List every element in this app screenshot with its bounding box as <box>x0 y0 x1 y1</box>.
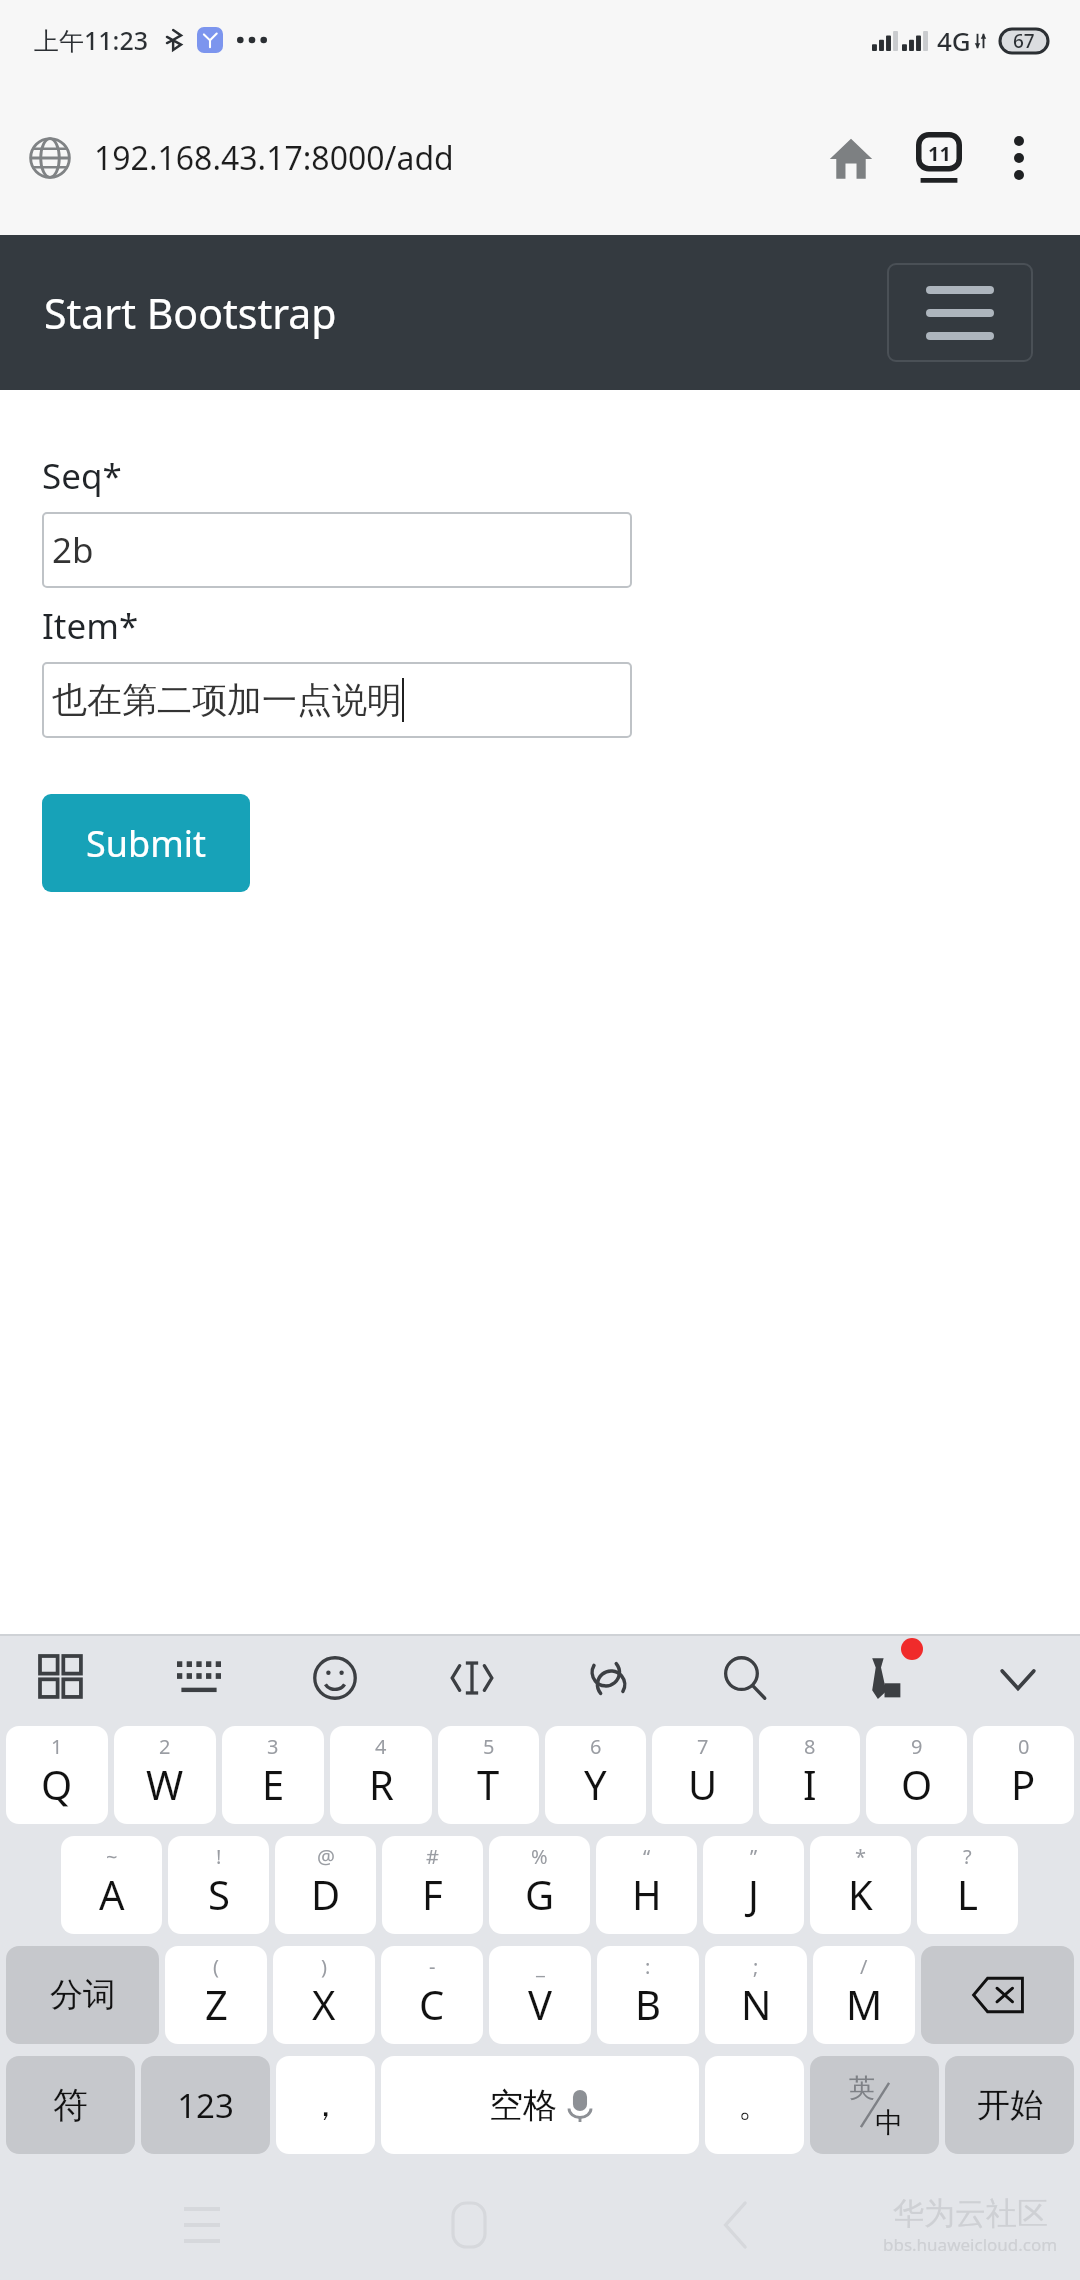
button[interactable]: - <box>381 1946 483 2044</box>
button[interactable]: 分词 <box>6 1946 159 2044</box>
staticText: 4G <box>937 23 971 58</box>
staticText: 也在第二项加一点说明 <box>52 678 402 722</box>
staticText: 分词 <box>50 1974 116 2016</box>
button[interactable]: 符 <box>6 2056 135 2154</box>
button[interactable]: 4 <box>330 1726 432 1824</box>
staticText: A <box>99 1867 125 1921</box>
button[interactable]: / <box>813 1946 915 2044</box>
button[interactable]: 3 <box>222 1726 324 1824</box>
staticText: % <box>531 1843 548 1870</box>
staticText: ) <box>321 1953 327 1980</box>
staticText: O <box>901 1757 933 1811</box>
staticText: 上午11:23 <box>34 23 149 57</box>
staticText: ， <box>309 2084 342 2126</box>
staticText: U <box>688 1757 718 1811</box>
button[interactable]: ; <box>705 1946 807 2044</box>
staticText: ( <box>213 1953 219 1980</box>
button[interactable]: 。 <box>705 2056 804 2154</box>
button[interactable]: 7 <box>652 1726 753 1824</box>
button[interactable]: @ <box>275 1836 376 1934</box>
button[interactable]: Start Bootstrap <box>44 285 337 341</box>
button[interactable]: 123 <box>141 2056 270 2154</box>
button[interactable]: 1 <box>6 1726 108 1824</box>
button[interactable]: More options <box>984 123 1054 193</box>
button[interactable]: 6 <box>545 1726 646 1824</box>
staticText: 2 <box>159 1733 171 1760</box>
staticText: 6 <box>590 1733 602 1760</box>
staticText: 。 <box>738 2084 771 2126</box>
staticText: - <box>429 1953 436 1980</box>
staticText: N <box>741 1977 772 2031</box>
button[interactable]: 空格 <box>381 2056 699 2154</box>
button[interactable]: 2b <box>42 512 632 588</box>
button[interactable]: Layouts <box>26 1642 98 1714</box>
button[interactable]: 也在第二项加一点说明 <box>42 662 632 738</box>
button[interactable]: 2 <box>114 1726 216 1824</box>
staticText: 0 <box>1018 1733 1030 1760</box>
button[interactable]: Submit <box>42 794 250 892</box>
button[interactable]: ! <box>168 1836 269 1934</box>
button[interactable]: Toggle navigation <box>887 263 1033 362</box>
staticText: X <box>312 1977 336 2031</box>
button[interactable]: 5 <box>438 1726 539 1824</box>
button[interactable]: Search <box>709 1642 781 1714</box>
staticText: Y <box>584 1757 607 1811</box>
staticText: 开始 <box>977 2084 1043 2126</box>
button[interactable]: 开始 <box>945 2056 1074 2154</box>
button[interactable]: 8 <box>759 1726 860 1824</box>
button[interactable]: Emoji <box>299 1642 371 1714</box>
staticText: R <box>369 1757 394 1811</box>
button[interactable]: Ads <box>845 1642 917 1714</box>
button[interactable]: 0 <box>973 1726 1074 1824</box>
button[interactable]: % <box>489 1836 590 1934</box>
staticText: 5 <box>483 1733 495 1760</box>
staticText: _ <box>536 1953 545 1980</box>
staticText: I <box>803 1757 817 1811</box>
staticText: S <box>208 1867 230 1921</box>
button[interactable]: ” <box>703 1836 804 1934</box>
staticText: 3 <box>267 1733 279 1760</box>
staticText: ~ <box>106 1843 118 1870</box>
button[interactable]: _ <box>489 1946 591 2044</box>
staticText: V <box>528 1977 552 2031</box>
button[interactable]: ， <box>276 2056 375 2154</box>
staticText: 192.168.43.17:8000/add <box>94 136 454 180</box>
button[interactable]: # <box>382 1836 483 1934</box>
staticText: L <box>957 1867 978 1921</box>
staticText: / <box>860 1953 868 1980</box>
staticText: 8 <box>804 1733 816 1760</box>
button[interactable]: Clipboard <box>572 1642 644 1714</box>
button[interactable]: Switch English Chinese <box>810 2056 939 2154</box>
staticText: 7 <box>697 1733 709 1760</box>
button[interactable]: : <box>597 1946 699 2044</box>
button[interactable]: Tabs, 11 open <box>900 119 978 197</box>
staticText: F <box>422 1867 443 1921</box>
button[interactable]: ~ <box>61 1836 162 1934</box>
staticText: P <box>1011 1757 1036 1811</box>
staticText: ; <box>753 1953 759 1980</box>
staticText: 华为云社区 <box>893 2194 1048 2233</box>
button[interactable]: ) <box>273 1946 375 2044</box>
button[interactable]: Move cursor <box>436 1642 508 1714</box>
button[interactable]: Backspace <box>921 1946 1074 2044</box>
staticText: E <box>262 1757 285 1811</box>
button[interactable]: ( <box>165 1946 267 2044</box>
staticText: Submit <box>86 819 207 868</box>
button[interactable]: Hide keyboard <box>982 1642 1054 1714</box>
staticText: T <box>477 1757 500 1811</box>
staticText: “ <box>643 1843 651 1870</box>
button[interactable]: “ <box>596 1836 697 1934</box>
staticText: : <box>645 1953 651 1980</box>
staticText: J <box>748 1867 759 1921</box>
staticText: G <box>525 1867 555 1921</box>
button[interactable]: Home <box>812 119 890 197</box>
button[interactable]: 9 <box>866 1726 967 1824</box>
staticText: H <box>632 1867 662 1921</box>
button[interactable]: Keyboard layout <box>163 1642 235 1714</box>
staticText: * <box>855 1843 867 1870</box>
button[interactable]: ? <box>917 1836 1018 1934</box>
button[interactable]: * <box>810 1836 911 1934</box>
button[interactable]: Recent apps <box>160 2183 244 2267</box>
